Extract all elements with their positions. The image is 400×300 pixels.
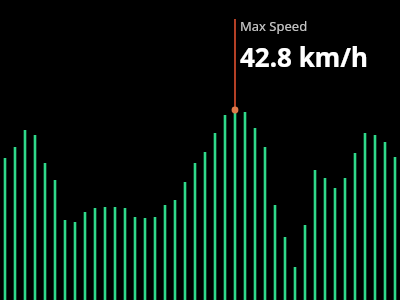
staticText: 42.8 km/h bbox=[240, 39, 368, 74]
staticText: Max Speed bbox=[240, 17, 308, 35]
button[interactable]: Max speed 42.8 kilometres per hour bbox=[240, 17, 368, 74]
